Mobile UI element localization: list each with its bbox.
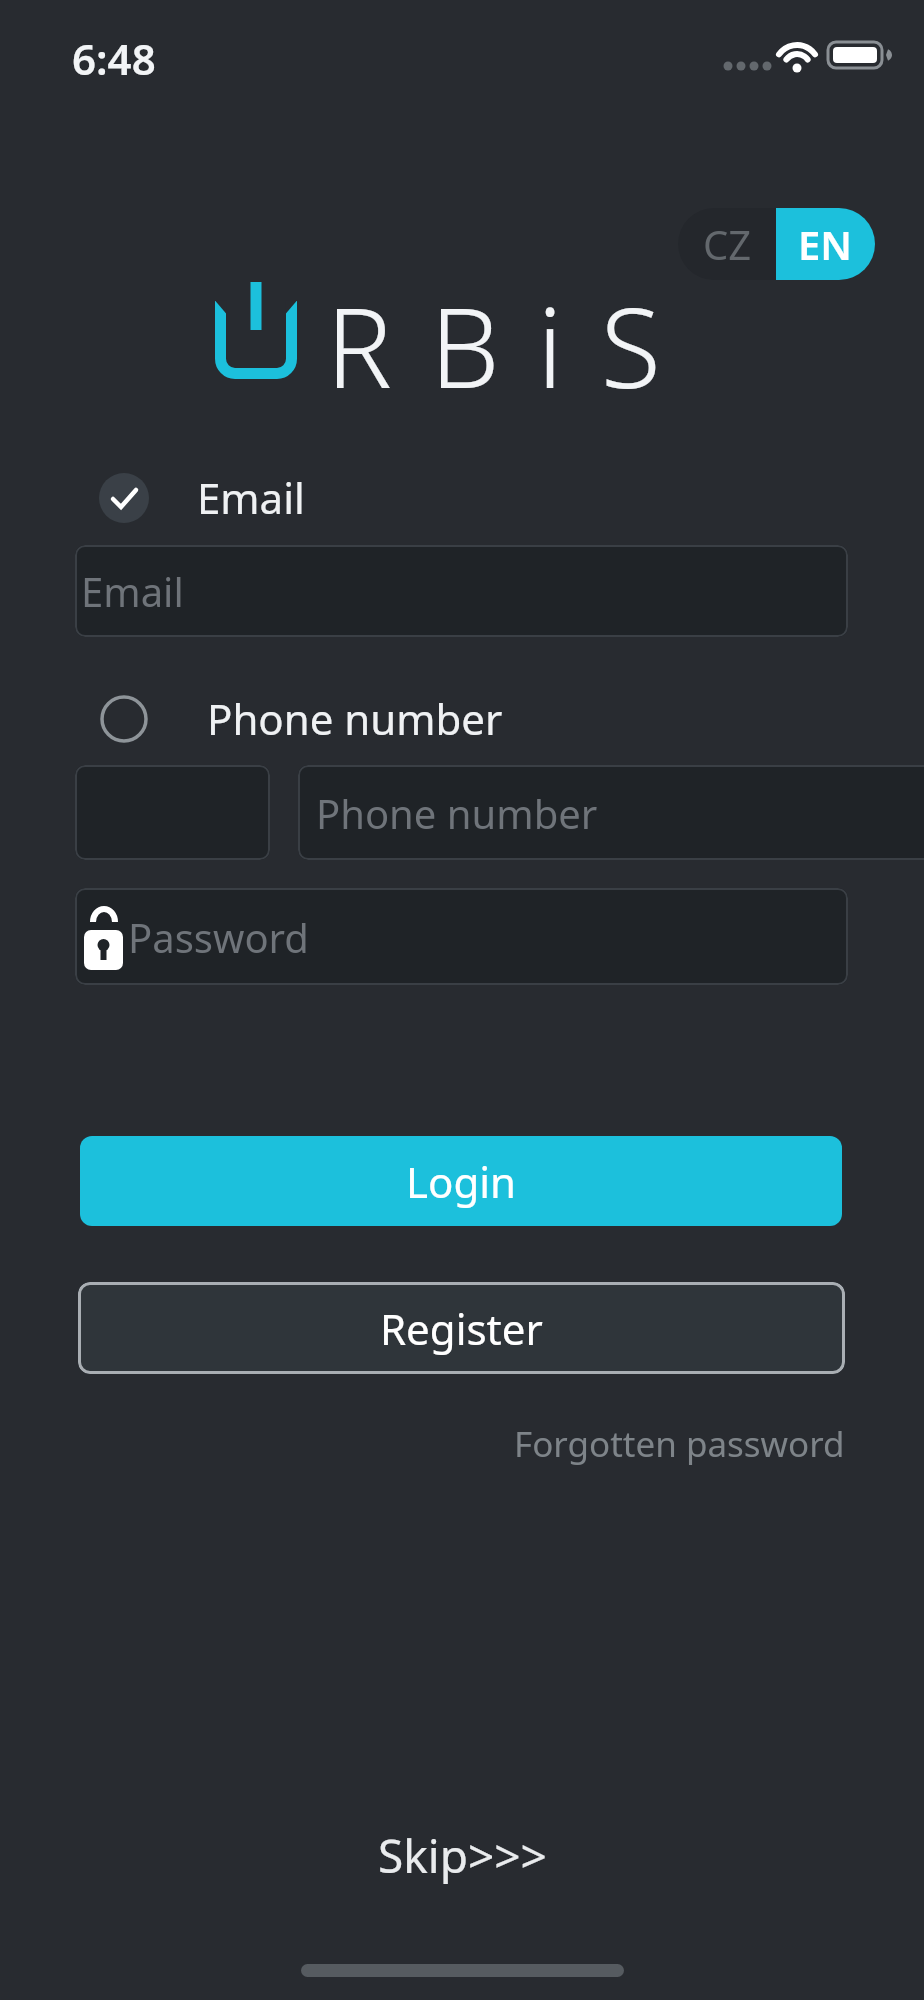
staticText: Email [197, 469, 305, 526]
button[interactable]: Phone number [298, 765, 924, 860]
staticText: Phone number [207, 690, 503, 747]
staticText: Login [406, 1153, 517, 1210]
button[interactable]: Phone number [99, 690, 503, 747]
button[interactable]: Email [75, 545, 848, 637]
button[interactable]: CZ [678, 208, 776, 280]
button[interactable]: Forgotten password [514, 1420, 845, 1468]
staticText: EN [798, 217, 853, 271]
button[interactable]: Password [75, 888, 848, 985]
staticText: 6:48 [72, 30, 156, 87]
staticText: Email [81, 564, 184, 618]
staticText: Phone number [316, 786, 598, 840]
button[interactable]: Email [99, 469, 305, 526]
button[interactable]: Login [80, 1136, 842, 1226]
button[interactable]: EN [776, 208, 875, 280]
staticText: Password [128, 910, 309, 964]
button[interactable]: Register [78, 1282, 845, 1374]
staticText: Register [380, 1300, 543, 1357]
staticText: CZ [703, 217, 752, 271]
button[interactable]: Skip>>> [378, 1824, 547, 1887]
button[interactable] [75, 765, 270, 860]
staticText: RBiS [326, 270, 699, 420]
